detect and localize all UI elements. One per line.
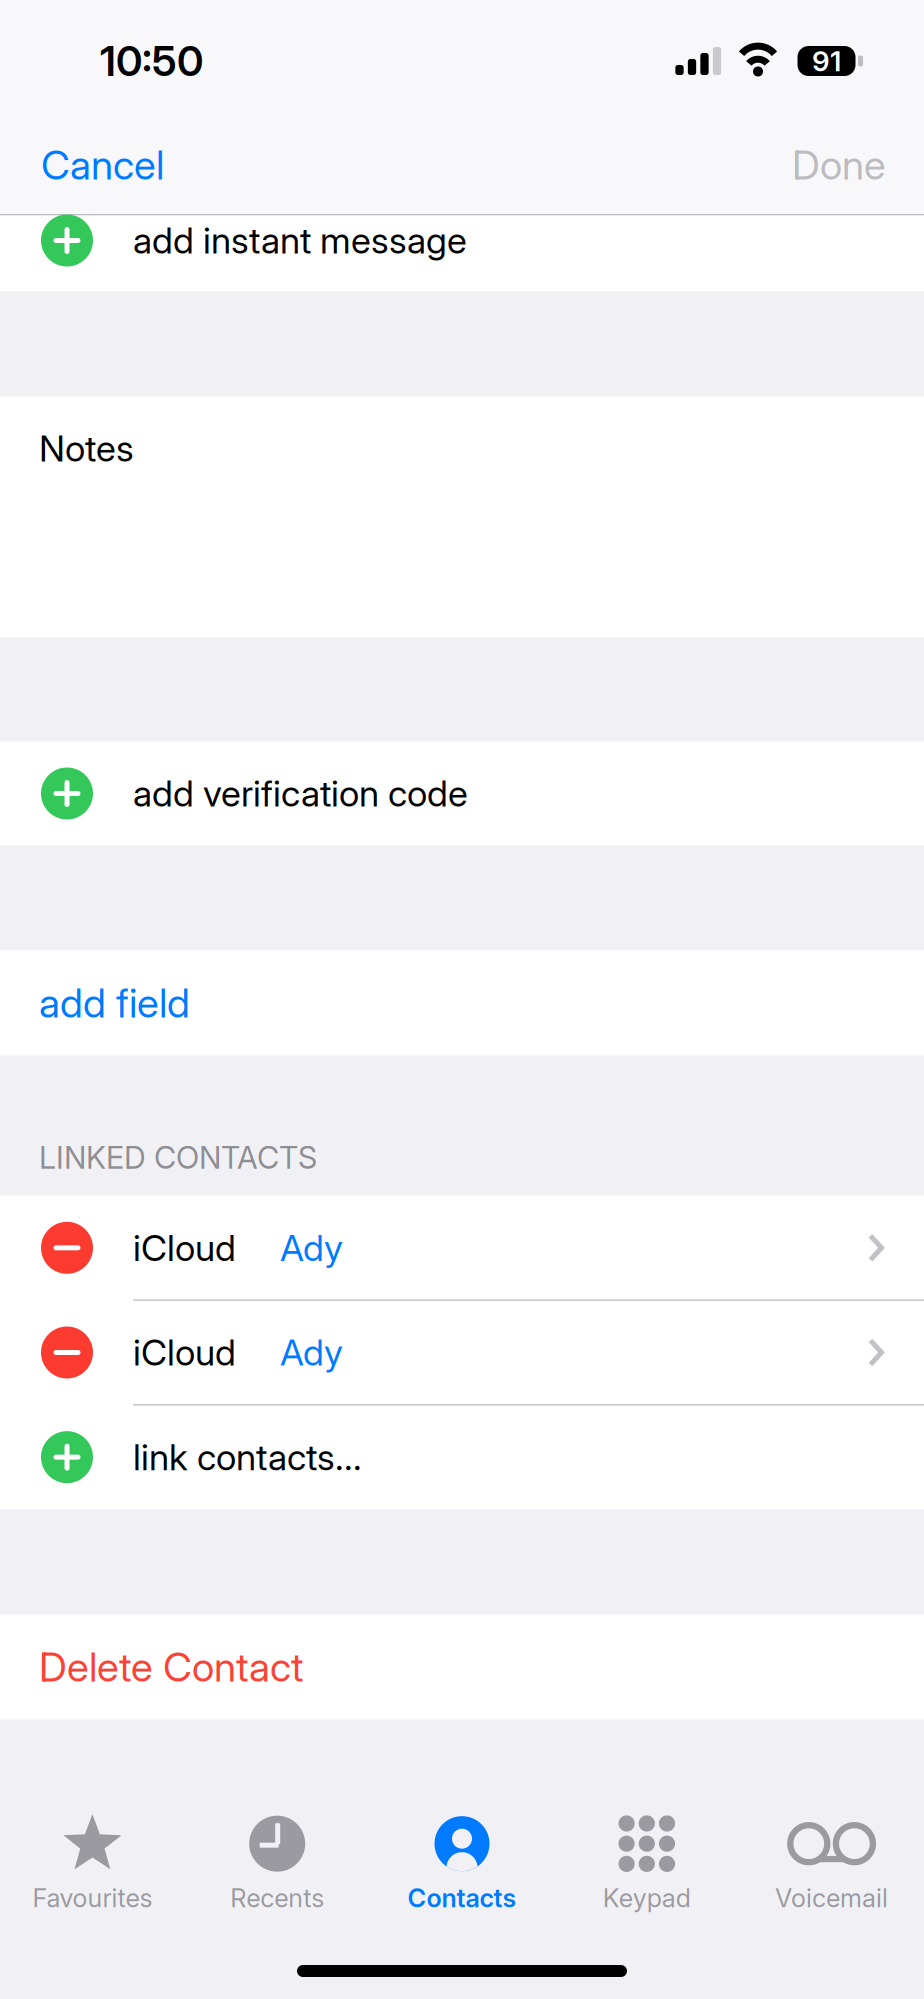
staticText: Done — [792, 141, 886, 189]
staticText: Recents — [230, 1883, 324, 1913]
staticText: Ady — [280, 1226, 343, 1270]
staticText: Contacts — [407, 1883, 516, 1913]
button[interactable]: Cancel — [0, 116, 188, 214]
staticText: Favourites — [32, 1883, 152, 1913]
staticText: LINKED CONTACTS — [39, 1139, 317, 1176]
button[interactable]: Delete Contact — [0, 1614, 924, 1719]
staticText: 91 — [812, 44, 841, 78]
button[interactable]: Recents — [185, 1808, 370, 1918]
staticText: add field — [39, 979, 190, 1027]
button[interactable]: link contacts... — [0, 1405, 924, 1509]
staticText: iCloud — [133, 1331, 236, 1374]
staticText: add verification code — [133, 772, 468, 815]
button[interactable]: add field — [0, 950, 924, 1055]
staticText: Ady — [280, 1331, 343, 1374]
staticText: Delete Contact — [39, 1643, 304, 1691]
button[interactable]: iCloud — [0, 1195, 924, 1300]
button[interactable]: Contacts — [370, 1808, 554, 1918]
staticText: add instant message — [133, 219, 467, 262]
button[interactable]: add verification code — [0, 741, 924, 845]
staticText: iCloud — [133, 1226, 236, 1270]
staticText: Voicemail — [775, 1883, 888, 1913]
staticText: Keypad — [603, 1883, 691, 1913]
button[interactable]: Favourites — [0, 1808, 185, 1918]
staticText: Notes — [39, 426, 134, 470]
button[interactable]: Voicemail — [739, 1808, 924, 1918]
button[interactable]: Done — [768, 116, 924, 214]
staticText: Cancel — [41, 141, 164, 189]
button[interactable]: iCloud — [0, 1300, 924, 1405]
staticText: 10:50 — [100, 36, 203, 86]
button[interactable]: Keypad — [554, 1808, 739, 1918]
staticText: link contacts... — [133, 1435, 362, 1479]
